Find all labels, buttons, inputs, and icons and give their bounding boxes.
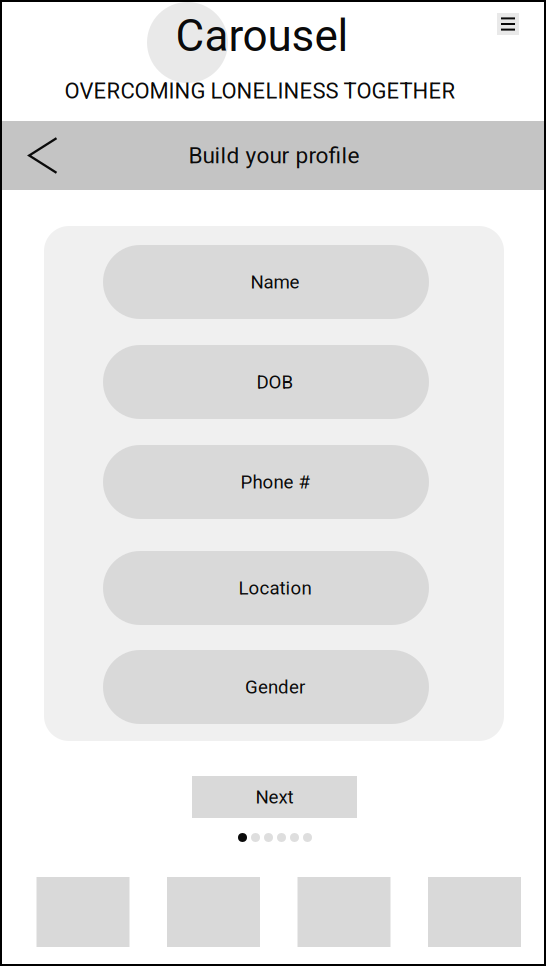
staticText: Carousel	[175, 10, 348, 62]
button[interactable]: DOB	[103, 345, 429, 419]
button[interactable]: Gender	[103, 650, 429, 724]
button[interactable]: Name	[103, 245, 429, 319]
staticText: Gender	[245, 676, 305, 698]
button[interactable]: Phone #	[103, 445, 429, 519]
staticText: Location	[238, 577, 311, 599]
staticText: Name	[250, 271, 299, 293]
button[interactable]: Back	[28, 137, 58, 174]
staticText: OVERCOMING LONELINESS TOGETHER	[64, 78, 455, 104]
staticText: Build your profile	[188, 142, 359, 169]
button[interactable]: Next	[192, 776, 357, 818]
button[interactable]: Location	[103, 551, 429, 625]
staticText: Next	[255, 786, 293, 808]
staticText: Phone #	[240, 471, 309, 493]
button[interactable]: Menu	[497, 13, 519, 35]
staticText: DOB	[256, 371, 293, 393]
